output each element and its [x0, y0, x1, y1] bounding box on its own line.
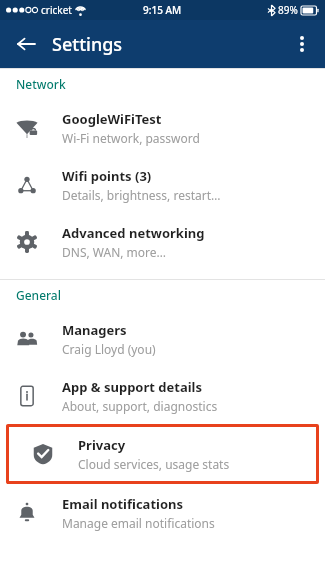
- staticText: Wi-Fi network, password: [62, 130, 200, 146]
- button[interactable]: Wifi points (3): [0, 156, 325, 213]
- staticText: Manage email notifications: [62, 515, 215, 531]
- button[interactable]: Privacy: [6, 424, 319, 484]
- staticText: Settings: [52, 32, 123, 57]
- button[interactable]: More options: [287, 29, 317, 59]
- button[interactable]: App & support details: [0, 367, 325, 424]
- staticText: About, support, diagnostics: [62, 398, 218, 414]
- staticText: Managers: [62, 321, 127, 339]
- staticText: Cloud services, usage stats: [78, 456, 230, 472]
- button[interactable]: Advanced networking: [0, 213, 325, 270]
- button[interactable]: Managers: [0, 310, 325, 367]
- button[interactable]: GoogleWiFiTest: [0, 99, 325, 156]
- staticText: Email notifications: [62, 495, 184, 513]
- staticText: Wifi points (3): [62, 167, 152, 185]
- staticText: GoogleWiFiTest: [62, 110, 162, 128]
- staticText: Details, brightness, restart…: [62, 187, 221, 203]
- button[interactable]: Email notifications: [0, 484, 325, 541]
- staticText: 9:15 AM: [143, 3, 182, 17]
- staticText: Craig Lloyd (you): [62, 341, 156, 357]
- staticText: DNS, WAN, more…: [62, 244, 167, 260]
- staticText: Advanced networking: [62, 224, 205, 242]
- staticText: 89%: [278, 3, 298, 17]
- staticText: App & support details: [62, 378, 202, 396]
- button[interactable]: Back: [12, 30, 40, 58]
- staticText: General: [16, 287, 61, 303]
- staticText: Network: [16, 76, 66, 92]
- staticText: cricket: [41, 3, 72, 17]
- staticText: Privacy: [78, 436, 126, 454]
